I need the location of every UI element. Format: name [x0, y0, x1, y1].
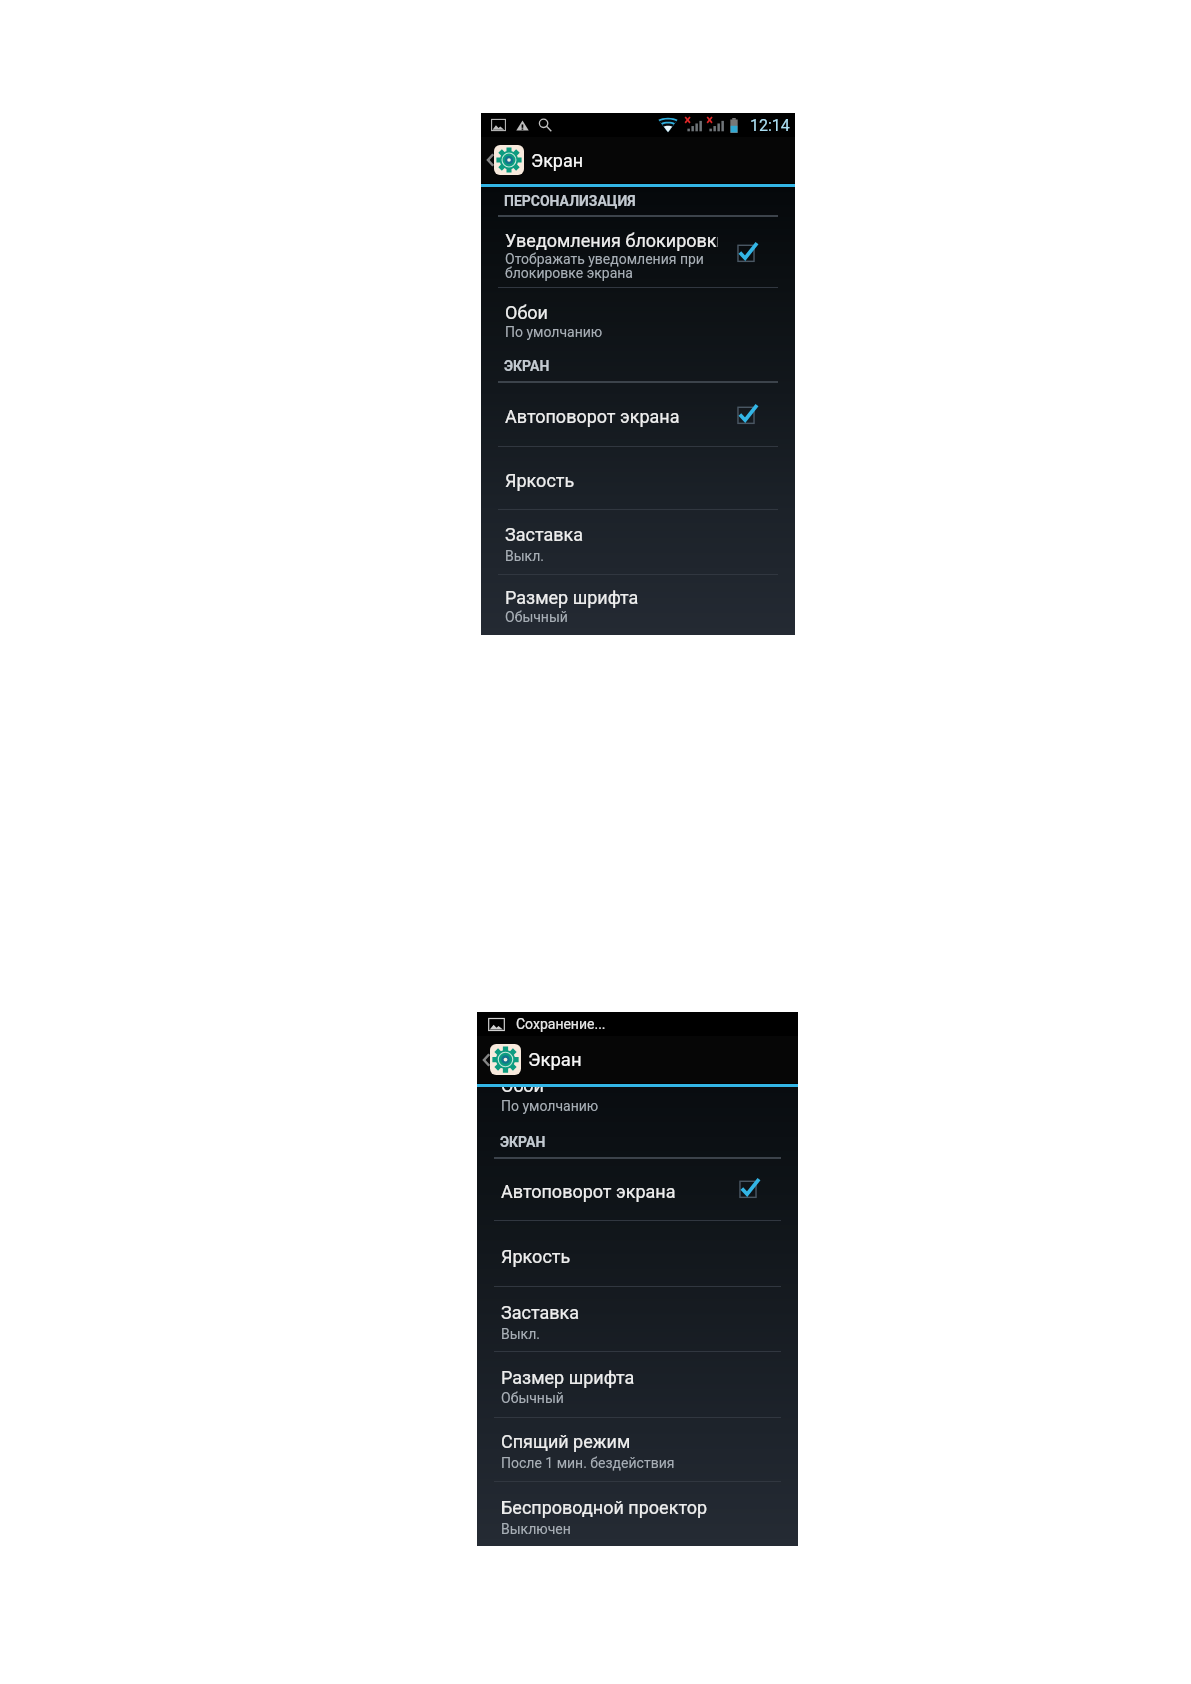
- staticText: Беспроводной проектор: [501, 1497, 708, 1518]
- staticText: Обычный: [501, 1390, 564, 1406]
- staticText: Сохранение...: [516, 1016, 606, 1032]
- other: Back: [485, 150, 496, 170]
- staticText: После 1 мин. бездействия: [501, 1455, 675, 1471]
- staticText: Заставка: [505, 524, 584, 545]
- button[interactable]: Размер шрифта: [481, 574, 795, 634]
- button[interactable]: Размер шрифта: [477, 1351, 798, 1416]
- staticText: Экран: [531, 150, 584, 171]
- staticText: ПЕРСОНАЛИЗАЦИЯ: [504, 193, 636, 209]
- button[interactable]: Checkbox: [729, 235, 763, 269]
- button[interactable]: Заставка: [481, 509, 795, 575]
- staticText: Яркость: [505, 470, 575, 491]
- button[interactable]: Автоповорот экрана: [481, 381, 795, 446]
- staticText: Экран: [528, 1049, 582, 1071]
- staticText: Размер шрифта: [505, 587, 639, 608]
- button[interactable]: Checkbox: [729, 397, 763, 431]
- staticText: ЭКРАН: [500, 1134, 546, 1150]
- button[interactable]: Обои: [481, 287, 795, 351]
- button[interactable]: Заставка: [477, 1286, 798, 1352]
- staticText: Яркость: [501, 1246, 571, 1267]
- staticText: Автоповорот экрана: [505, 406, 680, 427]
- staticText: По умолчанию: [505, 324, 603, 340]
- button[interactable]: Back: [477, 1036, 798, 1083]
- staticText: ЭКРАН: [504, 358, 550, 374]
- staticText: Размер шрифта: [501, 1367, 635, 1388]
- staticText: блокировке экрана: [505, 265, 633, 281]
- staticText: Обои: [505, 302, 548, 323]
- staticText: По умолчанию: [501, 1098, 599, 1114]
- staticText: Уведомления блокировки экрана: [505, 230, 718, 251]
- button[interactable]: Back: [481, 137, 795, 183]
- button[interactable]: Автоповорот экрана: [477, 1157, 798, 1220]
- staticText: 12:14: [750, 116, 790, 135]
- button[interactable]: Яркость: [477, 1220, 798, 1286]
- button[interactable]: Спящий режим: [477, 1417, 798, 1481]
- staticText: Отображать уведомления при: [505, 251, 704, 267]
- button[interactable]: Checkbox: [731, 1171, 765, 1205]
- button[interactable]: Уведомления блокировки экрана: [481, 215, 795, 288]
- staticText: Автоповорот экрана: [501, 1181, 676, 1202]
- button[interactable]: Беспроводной проектор: [477, 1481, 798, 1546]
- staticText: Заставка: [501, 1302, 580, 1323]
- staticText: Спящий режим: [501, 1431, 631, 1452]
- staticText: Обычный: [505, 609, 568, 625]
- staticText: Выключен: [501, 1521, 571, 1537]
- button[interactable]: Яркость: [481, 446, 795, 509]
- staticText: Обои: [501, 1086, 544, 1096]
- staticText: Выкл.: [505, 548, 544, 564]
- staticText: Выкл.: [501, 1326, 540, 1342]
- other: Back: [481, 1050, 492, 1070]
